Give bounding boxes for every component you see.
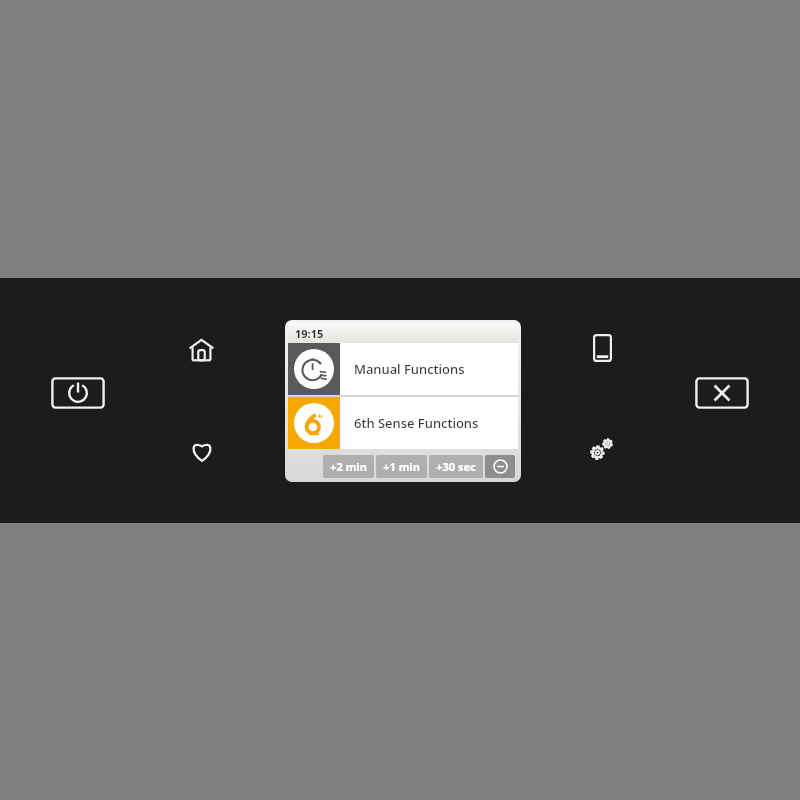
button[interactable]: Manual Functions (288, 343, 518, 395)
staticText: 6th Sense Functions (354, 414, 479, 432)
button[interactable]: Home (184, 332, 218, 366)
button[interactable]: +1 min (376, 455, 427, 478)
button[interactable]: 6th Sense Functions (288, 397, 518, 449)
button[interactable]: Favourites (185, 434, 219, 468)
button[interactable]: Decrease (485, 455, 515, 478)
staticText: +30 sec (436, 459, 476, 474)
staticText: Manual Functions (354, 360, 465, 378)
button[interactable]: Remote control (585, 331, 619, 365)
staticText: 19:15 (295, 326, 324, 341)
button[interactable]: Power (50, 376, 106, 410)
staticText: +2 min (330, 459, 367, 474)
button[interactable]: +2 min (323, 455, 374, 478)
button[interactable]: Settings (582, 430, 620, 468)
staticText: +1 min (383, 459, 420, 474)
button[interactable]: +30 sec (429, 455, 483, 478)
button[interactable]: Close (694, 376, 750, 410)
